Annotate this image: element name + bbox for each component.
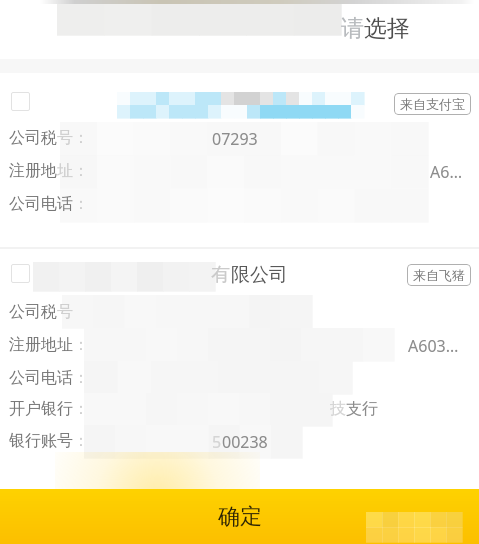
staticText: 公司税 bbox=[9, 128, 57, 148]
staticText: 选择 bbox=[364, 14, 410, 43]
staticText: 确定 bbox=[218, 503, 262, 531]
button[interactable]: 来自飞猪 bbox=[407, 264, 471, 286]
staticText: 公司电话 bbox=[9, 194, 73, 214]
staticText: 支行 bbox=[346, 399, 378, 419]
staticText: ： bbox=[73, 194, 89, 214]
staticText: ： bbox=[73, 335, 89, 355]
button[interactable]: Select company bbox=[0, 249, 479, 455]
button[interactable]: 来自支付宝 bbox=[394, 93, 471, 115]
staticText: ： bbox=[73, 368, 89, 388]
button[interactable]: Select company bbox=[0, 73, 479, 247]
staticText: 07293 bbox=[212, 128, 258, 150]
staticText: 有 bbox=[211, 263, 230, 287]
staticText: 开户银行 bbox=[9, 399, 73, 419]
staticText: 请 bbox=[341, 14, 364, 43]
staticText: ： bbox=[73, 399, 89, 419]
staticText: 来自飞猪 bbox=[413, 267, 465, 283]
staticText: 限公司 bbox=[231, 263, 288, 287]
staticText: 公司税 bbox=[9, 302, 57, 322]
button[interactable]: Select company bbox=[11, 92, 30, 111]
staticText: 来自支付宝 bbox=[400, 96, 465, 112]
staticText: 址： bbox=[57, 161, 89, 181]
staticText: 注册地址 bbox=[9, 335, 73, 355]
staticText: 技 bbox=[330, 399, 346, 419]
staticText: A603… bbox=[408, 335, 459, 357]
staticText: A6… bbox=[430, 161, 463, 183]
staticText: ： bbox=[73, 431, 89, 451]
staticText: 号 bbox=[57, 302, 73, 322]
staticText: 号： bbox=[57, 128, 89, 148]
staticText: 00238 bbox=[222, 431, 268, 453]
button[interactable]: 确定 bbox=[0, 489, 479, 544]
staticText: 注册地 bbox=[9, 161, 57, 181]
staticText: 公司电话 bbox=[9, 368, 73, 388]
button[interactable]: Select company bbox=[11, 264, 30, 283]
staticText: 5 bbox=[212, 431, 222, 453]
staticText: 银行账号 bbox=[9, 431, 73, 451]
